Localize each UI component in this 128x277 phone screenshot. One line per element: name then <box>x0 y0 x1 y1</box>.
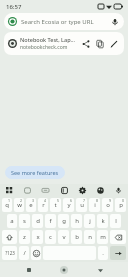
staticText: p <box>119 201 123 209</box>
button[interactable]: k <box>97 214 108 228</box>
button[interactable]: j <box>84 214 95 228</box>
staticText: d <box>36 217 40 225</box>
button[interactable]: n <box>84 230 95 244</box>
button[interactable]: Emoji <box>31 246 41 260</box>
button[interactable]: c <box>45 230 56 244</box>
staticText: notebookcheck.com <box>20 44 68 51</box>
staticText: 3 <box>32 198 35 203</box>
button[interactable]: ?123 <box>2 246 17 260</box>
button[interactable]: i <box>89 198 100 212</box>
staticText: g <box>62 217 66 225</box>
button[interactable]: q <box>2 198 12 212</box>
staticText: s <box>23 217 26 225</box>
staticText: u <box>80 201 84 209</box>
staticText: r <box>42 201 45 209</box>
button[interactable]: Edit <box>107 37 120 50</box>
button[interactable]: p <box>115 198 126 212</box>
button[interactable]: m <box>97 230 108 244</box>
staticText: b <box>75 233 79 241</box>
button[interactable]: Enter <box>110 246 126 260</box>
staticText: 9 <box>109 198 112 203</box>
button[interactable]: . <box>98 246 108 260</box>
button[interactable]: Sticker <box>59 185 70 196</box>
button[interactable]: Notebook Test, Lapto… <box>4 32 124 55</box>
button[interactable]: Copy <box>93 37 106 50</box>
staticText: 0 <box>122 198 125 203</box>
staticText: c <box>49 233 52 241</box>
button[interactable]: Clipboard <box>22 185 33 196</box>
button[interactable]: Backspace <box>110 230 126 244</box>
button[interactable]: r <box>38 198 48 212</box>
staticText: Search Ecosia or type URL <box>21 18 107 26</box>
button[interactable]: Voice search <box>110 17 120 27</box>
staticText: 6 <box>70 198 73 203</box>
staticText: n <box>88 233 92 241</box>
button[interactable]: Settings <box>77 185 88 196</box>
staticText: Notebook Test, Lapto… <box>20 36 77 43</box>
staticText: l <box>115 217 117 225</box>
staticText: z <box>23 233 26 241</box>
button[interactable]: z <box>19 230 30 244</box>
button[interactable]: l <box>110 214 121 228</box>
button[interactable]: f <box>45 214 56 228</box>
button[interactable]: Apps <box>4 185 15 196</box>
staticText: a <box>10 217 14 225</box>
staticText: w <box>17 201 22 209</box>
button[interactable]: b <box>71 230 82 244</box>
staticText: o <box>106 201 110 209</box>
button[interactable]: s <box>19 214 30 228</box>
staticText: v <box>62 233 66 241</box>
button[interactable]: Theme <box>95 185 106 196</box>
staticText: m <box>100 233 106 241</box>
staticText: 5 <box>57 198 60 203</box>
button[interactable]: a <box>7 214 17 228</box>
button[interactable]: x <box>32 230 43 244</box>
staticText: See more features <box>11 169 59 176</box>
staticText: j <box>89 217 91 225</box>
button[interactable]: d <box>32 214 43 228</box>
button[interactable]: Home <box>57 263 71 277</box>
button[interactable]: h <box>71 214 82 228</box>
staticText: / <box>23 249 26 257</box>
staticText: . <box>102 249 104 257</box>
staticText: ?123 <box>5 250 15 256</box>
button[interactable]: Search Ecosia or type URL <box>4 13 124 30</box>
button[interactable]: Translate <box>40 185 51 196</box>
button[interactable]: w <box>14 198 24 212</box>
staticText: 8 <box>96 198 99 203</box>
button[interactable]: y <box>63 198 74 212</box>
staticText: 1 <box>8 198 11 203</box>
button[interactable]: Shift <box>2 230 17 244</box>
staticText: 4 <box>44 198 47 203</box>
button[interactable]: Back <box>93 263 107 277</box>
button[interactable]: / <box>19 246 29 260</box>
staticText: q <box>5 201 9 209</box>
staticText: 7 <box>83 198 86 203</box>
button[interactable]: Recent apps <box>22 263 36 277</box>
staticText: 2 <box>20 198 23 203</box>
button[interactable]: e <box>26 198 36 212</box>
staticText: h <box>75 217 79 225</box>
staticText: f <box>49 217 52 225</box>
button[interactable]: Share <box>79 37 92 50</box>
staticText: e <box>29 201 33 209</box>
button[interactable]: u <box>76 198 87 212</box>
button[interactable]: See more features <box>5 166 65 179</box>
button[interactable]: v <box>58 230 69 244</box>
staticText: x <box>36 233 40 241</box>
button[interactable]: t <box>50 198 61 212</box>
button[interactable]: o <box>102 198 113 212</box>
button[interactable]: Voice input <box>113 185 124 196</box>
button[interactable]: g <box>58 214 69 228</box>
staticText: 16:57 <box>6 3 22 11</box>
staticText: t <box>54 201 57 209</box>
staticText: y <box>67 201 71 209</box>
staticText: k <box>101 217 105 225</box>
staticText: i <box>94 201 96 209</box>
